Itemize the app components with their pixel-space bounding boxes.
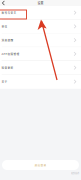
button[interactable]: 消息提醒 [0,33,81,47]
staticText: 软件技术 [71,171,79,175]
staticText: 消息提醒 [2,38,14,42]
staticText: 单位 [2,24,8,28]
button[interactable]: 账号与安全 [0,6,81,20]
staticText: 账号与安全 [2,11,17,15]
button[interactable]: 退出登录 [2,160,79,170]
button[interactable]: 单位 [0,20,81,34]
button[interactable]: APP权限管理 [0,47,81,61]
staticText: 设置 [37,1,43,5]
staticText: APP权限管理 [2,52,20,56]
staticText: 关于 [2,80,8,84]
staticText: 检查更新 [2,66,14,70]
button[interactable]: Back [0,0,7,6]
button[interactable]: 关于 [0,75,81,89]
staticText: 退出登录 [34,163,46,167]
button[interactable]: 检查更新 [0,61,81,75]
